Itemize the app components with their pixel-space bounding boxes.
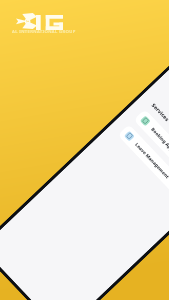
staticText: AL INTERNATIONAL GROUP — [12, 29, 76, 35]
staticText: Leave Management — [134, 141, 169, 179]
staticText: Services — [151, 101, 169, 123]
staticText: Booking Appointment — [150, 126, 169, 169]
button[interactable]: Leave Management — [117, 124, 169, 202]
button[interactable]: Booking Appointment — [133, 109, 169, 187]
